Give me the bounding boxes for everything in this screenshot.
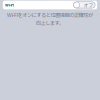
staticText: 向上します。 xyxy=(36,19,64,27)
staticText: Wi-Fi xyxy=(5,2,14,8)
staticText: Wi-Fiをオンにすると位置情報の正確性が xyxy=(7,11,93,18)
staticText: オフ xyxy=(83,1,93,9)
button[interactable]: Wi-Fi xyxy=(3,1,97,9)
